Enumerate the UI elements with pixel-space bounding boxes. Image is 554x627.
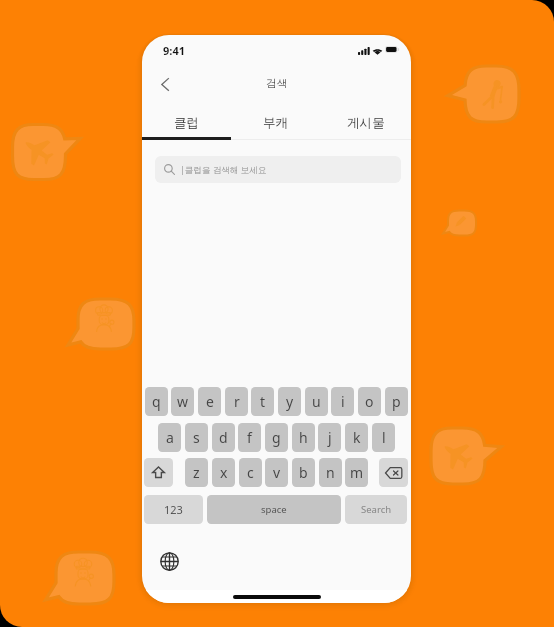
button[interactable]: f <box>238 423 261 452</box>
button[interactable]: Search <box>345 495 407 524</box>
button[interactable]: a <box>158 423 181 452</box>
staticText: c <box>247 463 254 482</box>
staticText: e <box>206 392 214 411</box>
button[interactable]: Backspace <box>379 458 408 487</box>
button[interactable]: d <box>212 423 235 452</box>
button[interactable]: u <box>305 387 328 416</box>
staticText: r <box>234 392 240 411</box>
staticText: 게시물 <box>347 115 385 131</box>
staticText: 클럽 <box>174 115 200 131</box>
staticText: y <box>286 392 294 411</box>
button[interactable]: r <box>225 387 248 416</box>
staticText: q <box>152 392 161 411</box>
staticText: u <box>312 392 321 411</box>
staticText: f <box>247 428 252 447</box>
button[interactable]: g <box>265 423 288 452</box>
staticText: Search <box>361 503 392 516</box>
staticText: i <box>341 392 345 411</box>
button[interactable]: v <box>265 458 288 487</box>
button[interactable]: z <box>185 458 208 487</box>
staticText: w <box>177 392 189 411</box>
button[interactable]: l <box>372 423 395 452</box>
button[interactable]: n <box>319 458 342 487</box>
staticText: 9:41 <box>163 43 185 58</box>
staticText: v <box>273 463 281 482</box>
staticText: 부캐 <box>263 115 289 131</box>
staticText: j <box>328 428 332 447</box>
button[interactable]: 123 <box>144 495 203 524</box>
button[interactable]: Change keyboard language <box>156 548 182 574</box>
staticText: 검색 <box>266 77 288 91</box>
staticText: n <box>326 463 335 482</box>
button[interactable]: o <box>358 387 381 416</box>
button[interactable]: s <box>185 423 208 452</box>
staticText: s <box>193 428 200 447</box>
button[interactable]: 클럽 <box>142 110 231 136</box>
button[interactable]: t <box>251 387 274 416</box>
button[interactable]: Shift <box>144 458 173 487</box>
button[interactable]: j <box>318 423 341 452</box>
button[interactable]: space <box>207 495 341 524</box>
button[interactable]: c <box>239 458 262 487</box>
staticText: d <box>219 428 228 447</box>
staticText: z <box>193 463 200 482</box>
button[interactable]: k <box>345 423 368 452</box>
button[interactable]: e <box>198 387 221 416</box>
staticText: l <box>382 428 386 447</box>
button[interactable]: |클럽을 검색해 보세요 <box>155 156 401 183</box>
staticText: p <box>392 392 401 411</box>
staticText: |클럽을 검색해 보세요 <box>180 164 267 176</box>
staticText: m <box>350 463 364 482</box>
button[interactable]: Back <box>148 66 181 102</box>
staticText: x <box>220 463 228 482</box>
staticText: h <box>299 428 308 447</box>
staticText: b <box>299 463 308 482</box>
staticText: a <box>166 428 174 447</box>
button[interactable]: w <box>171 387 194 416</box>
button[interactable]: x <box>212 458 235 487</box>
staticText: g <box>272 428 281 447</box>
staticText: 123 <box>164 502 183 517</box>
button[interactable]: q <box>145 387 168 416</box>
staticText: k <box>353 428 361 447</box>
staticText: t <box>260 392 266 411</box>
button[interactable]: b <box>292 458 315 487</box>
button[interactable]: p <box>385 387 408 416</box>
button[interactable]: 게시물 <box>321 110 411 136</box>
button[interactable]: y <box>278 387 301 416</box>
button[interactable]: m <box>345 458 368 487</box>
staticText: space <box>261 503 287 516</box>
button[interactable]: i <box>331 387 354 416</box>
button[interactable]: h <box>292 423 315 452</box>
button[interactable]: 부캐 <box>231 110 321 136</box>
staticText: o <box>365 392 374 411</box>
